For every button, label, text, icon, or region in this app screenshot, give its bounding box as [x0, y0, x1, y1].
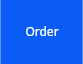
button[interactable]: Order — [1, 0, 82, 64]
staticText: Order — [25, 23, 59, 39]
